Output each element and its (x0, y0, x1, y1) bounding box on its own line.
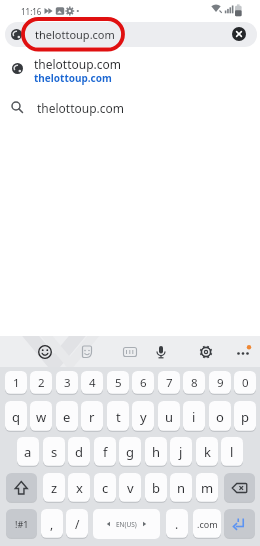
button[interactable] (199, 345, 213, 359)
staticText: 6 (140, 375, 147, 391)
staticText: q (12, 408, 20, 426)
button[interactable]: d (68, 437, 90, 467)
button[interactable]: o (209, 401, 231, 432)
staticText: thelottoup.com (35, 27, 115, 42)
staticText: z (51, 479, 58, 497)
button[interactable]: 7 (158, 371, 180, 395)
button[interactable]: j (170, 437, 192, 467)
staticText: !#1 (15, 518, 29, 530)
staticText: thelottoup.com (34, 56, 122, 72)
staticText: 7 (166, 375, 173, 391)
staticText: 9 (217, 375, 224, 391)
button[interactable]: w (30, 401, 52, 432)
button[interactable]: 9 (209, 371, 231, 395)
button[interactable] (38, 345, 52, 359)
staticText: n (177, 479, 186, 497)
staticText: y (140, 408, 147, 426)
button[interactable]: k (196, 437, 218, 467)
button[interactable]: , (41, 509, 63, 539)
button[interactable]: n (170, 473, 192, 503)
staticText: 2 (38, 375, 45, 391)
button[interactable] (5, 22, 257, 47)
button[interactable]: 8 (183, 371, 205, 395)
staticText: e (63, 408, 71, 426)
button[interactable]: p (234, 401, 256, 432)
button[interactable]: v (119, 473, 141, 503)
button[interactable]: thelottoup.com (0, 54, 260, 88)
staticText: 4 (89, 375, 96, 391)
staticText: a (24, 443, 32, 461)
staticText: 8 (191, 375, 198, 391)
button[interactable] (6, 473, 37, 503)
button[interactable]: 5 (107, 371, 129, 395)
button[interactable]: f (94, 437, 116, 467)
button[interactable]: 6 (132, 371, 154, 395)
staticText: .com (197, 518, 218, 530)
staticText: u (165, 408, 174, 426)
button[interactable] (80, 345, 94, 359)
staticText: r (89, 408, 95, 426)
button[interactable]: q (5, 401, 27, 432)
staticText: c (102, 479, 109, 497)
staticText: 0 (242, 375, 249, 391)
staticText: s (51, 443, 58, 461)
staticText: . (175, 516, 179, 532)
staticText: o (216, 408, 224, 426)
staticText: f (103, 443, 108, 461)
button[interactable]: !#1 (6, 509, 37, 539)
button[interactable]: 3 (56, 371, 78, 395)
staticText: , (50, 516, 54, 532)
button[interactable]: thelottoup.com (0, 96, 260, 124)
staticText: thelottoup.com (37, 100, 125, 116)
button[interactable]: h (145, 437, 167, 467)
staticText: w (36, 408, 47, 426)
staticText: 3 (64, 375, 71, 391)
button[interactable] (154, 345, 168, 359)
button[interactable]: 0 (234, 371, 256, 395)
staticText: t (116, 408, 121, 426)
button[interactable]: a (17, 437, 39, 467)
button[interactable]: x (68, 473, 90, 503)
button[interactable]: .com (193, 509, 221, 539)
staticText: d (75, 443, 83, 461)
button[interactable]: . (166, 509, 188, 539)
staticText: x (76, 479, 83, 497)
button[interactable]: c (94, 473, 116, 503)
staticText: i (192, 408, 196, 426)
button[interactable]: b (145, 473, 167, 503)
button[interactable] (224, 473, 255, 503)
button[interactable]: z (43, 473, 65, 503)
button[interactable]: 2 (30, 371, 52, 395)
staticText: k (204, 443, 211, 461)
button[interactable]: y (132, 401, 154, 432)
staticText: b (152, 479, 160, 497)
button[interactable] (123, 345, 137, 359)
button[interactable]: m (196, 473, 218, 503)
button[interactable]: t (107, 401, 129, 432)
staticText: 5 (115, 375, 122, 391)
button[interactable] (236, 345, 250, 359)
button[interactable]: / (66, 509, 88, 539)
button[interactable]: l (221, 437, 243, 467)
staticText: 1 (13, 375, 20, 391)
button[interactable] (232, 27, 246, 41)
staticText: / (75, 516, 80, 532)
button[interactable]: 1 (5, 371, 27, 395)
staticText: thelottoup.com (34, 71, 112, 85)
button[interactable]: i (183, 401, 205, 432)
button[interactable] (224, 509, 255, 539)
button[interactable]: s (43, 437, 65, 467)
staticText: m (201, 479, 214, 497)
staticText: j (179, 443, 183, 461)
staticText: p (241, 408, 249, 426)
button[interactable]: u (158, 401, 180, 432)
button[interactable]: 4 (81, 371, 103, 395)
staticText: EN(US) (116, 520, 137, 529)
staticText: l (230, 443, 234, 461)
button[interactable]: e (56, 401, 78, 432)
staticText: h (152, 443, 161, 461)
staticText: g (126, 443, 134, 461)
button[interactable]: g (119, 437, 141, 467)
button[interactable]: EN(US) (93, 509, 160, 539)
button[interactable]: r (81, 401, 103, 432)
